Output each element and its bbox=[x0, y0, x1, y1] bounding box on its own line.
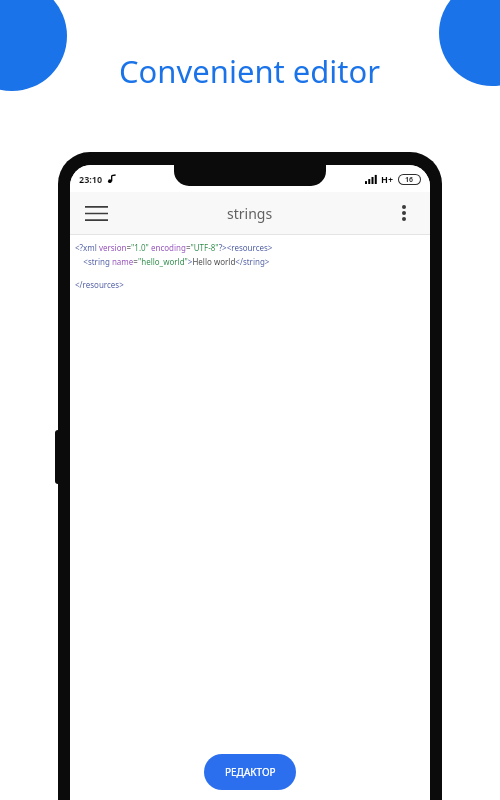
button[interactable]: Open navigation menu bbox=[77, 194, 115, 232]
staticText: <?xml version="1.0" encoding="UTF-8"?><r… bbox=[75, 242, 273, 253]
staticText: <string name="hello_world">Hello world</… bbox=[75, 256, 270, 267]
staticText: strings bbox=[227, 204, 273, 223]
staticText: H+ bbox=[381, 173, 394, 185]
staticText: 23:10 bbox=[79, 173, 103, 185]
staticText: Convenient editor bbox=[119, 50, 381, 92]
button[interactable]: More options bbox=[385, 194, 423, 232]
staticText: РЕДАКТОР bbox=[225, 765, 276, 779]
staticText: 16 bbox=[405, 175, 414, 184]
staticText: </resources> bbox=[75, 279, 124, 290]
button[interactable]: РЕДАКТОР bbox=[204, 754, 296, 790]
